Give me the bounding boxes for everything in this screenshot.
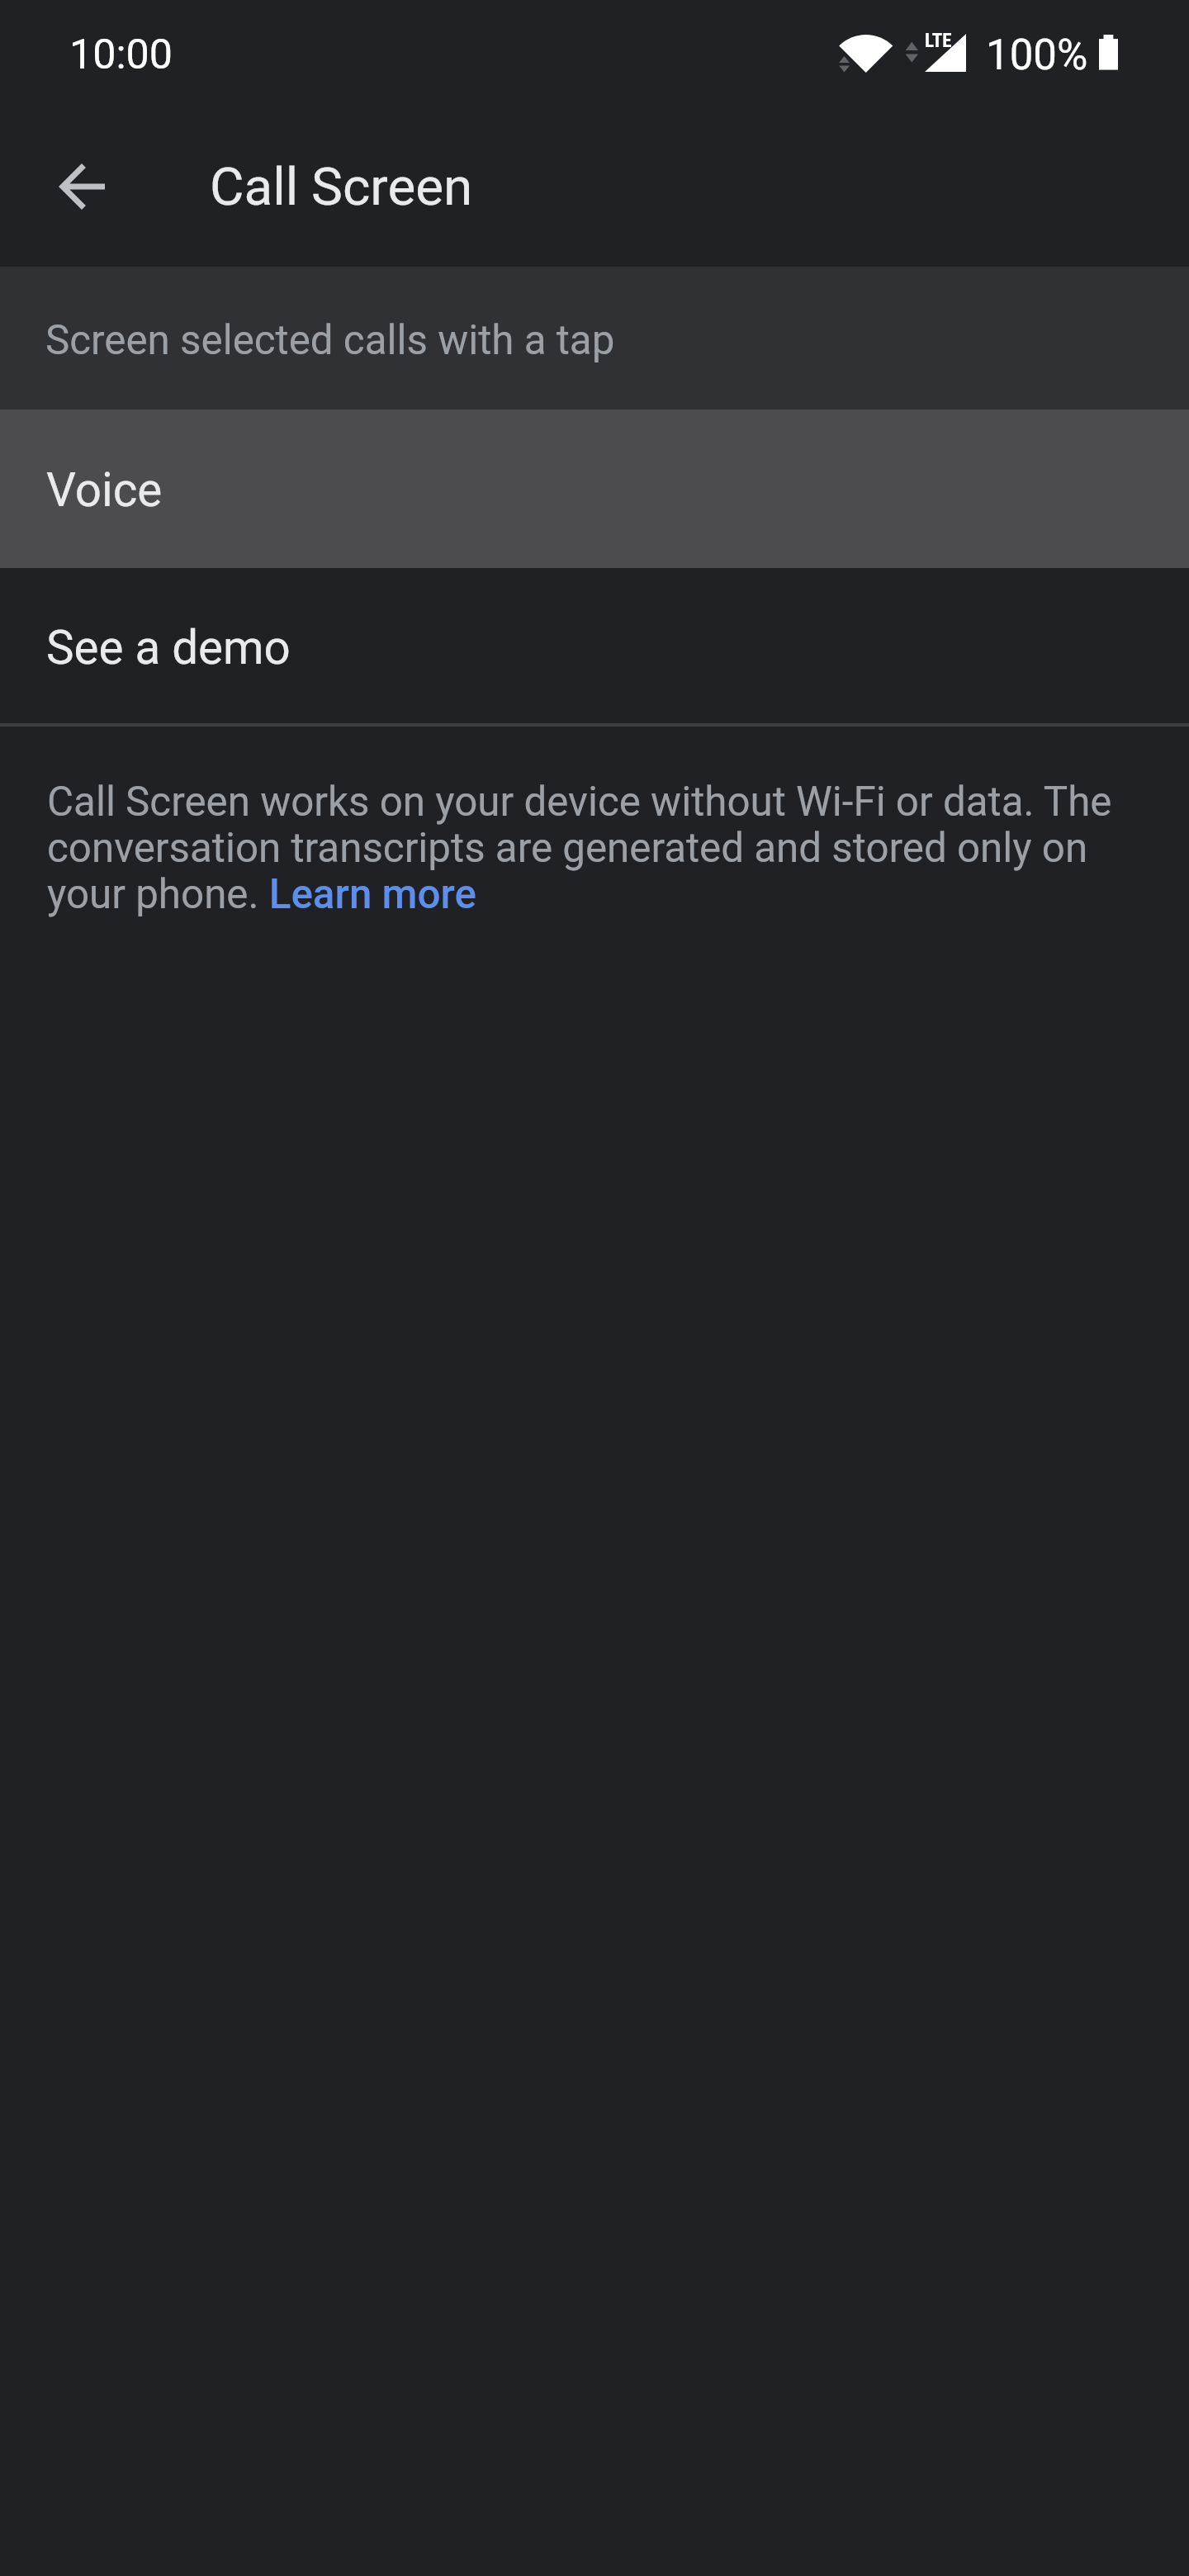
staticText: Screen selected calls with a tap [45, 316, 615, 364]
staticText: LTE [925, 31, 952, 51]
staticText: 10:00 [69, 29, 173, 78]
staticText: Voice [46, 462, 163, 518]
staticText: Call Screen [210, 154, 473, 218]
staticText: See a demo [46, 620, 291, 675]
button[interactable]: Voice [0, 410, 1189, 568]
staticText: 100% [986, 30, 1088, 79]
button[interactable]: See a demo [0, 568, 1189, 723]
button[interactable]: Learn more [268, 872, 476, 918]
button[interactable]: Back [31, 136, 131, 236]
staticText: Call Screen works on your device without… [47, 779, 1145, 918]
